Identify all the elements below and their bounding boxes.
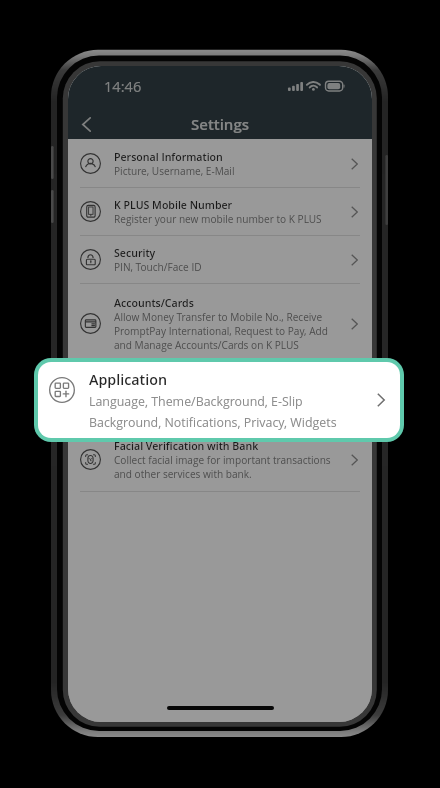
staticText: Picture, Username, E-Mail <box>114 164 235 178</box>
staticText: Allow Money Transfer to Mobile No., Rece… <box>114 310 323 324</box>
staticText: Accounts/Cards <box>114 296 194 310</box>
button[interactable]: Back <box>71 110 101 139</box>
button[interactable]: K PLUS Mobile Number <box>68 188 372 235</box>
staticText: PIN, Touch/Face ID <box>114 260 202 274</box>
staticText: Facial Verification with Bank <box>114 439 259 453</box>
staticText: and Manage Accounts/Cards on K PLUS <box>114 338 299 352</box>
button[interactable]: Security <box>68 236 372 283</box>
staticText: 14:46 <box>104 76 142 96</box>
button[interactable]: Application <box>38 362 400 438</box>
staticText: Background, Notifications, Privacy, Widg… <box>89 414 337 431</box>
staticText: Background, Notifications, Privacy, Widg… <box>114 403 316 417</box>
button[interactable]: Application <box>68 364 372 427</box>
staticText: Language, Theme/Background, E-Slip <box>89 393 303 410</box>
button[interactable]: Personal Information <box>68 140 372 187</box>
staticText: Personal Information <box>114 150 223 164</box>
staticText: Application <box>114 375 172 389</box>
staticText: PromptPay International, Request to Pay,… <box>114 324 328 338</box>
button[interactable]: Facial Verification with Bank <box>68 428 372 491</box>
button[interactable]: Accounts/Cards <box>68 284 372 363</box>
staticText: K PLUS Mobile Number <box>114 198 233 212</box>
staticText: Language, Theme/Background, E-Slip <box>114 389 289 403</box>
staticText: Collect facial image for important trans… <box>114 453 331 467</box>
staticText: Security <box>114 246 156 260</box>
staticText: and other services with bank. <box>114 467 252 481</box>
staticText: Register your new mobile number to K PLU… <box>114 212 322 226</box>
staticText: Settings <box>191 114 250 134</box>
staticText: Application <box>89 370 168 389</box>
